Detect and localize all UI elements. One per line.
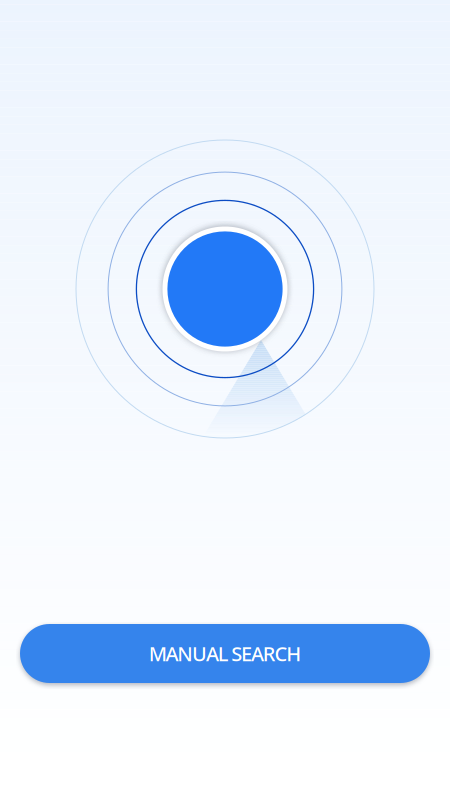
staticText: MANUAL SEARCH: [149, 640, 301, 667]
button[interactable]: MANUAL SEARCH: [20, 624, 430, 683]
